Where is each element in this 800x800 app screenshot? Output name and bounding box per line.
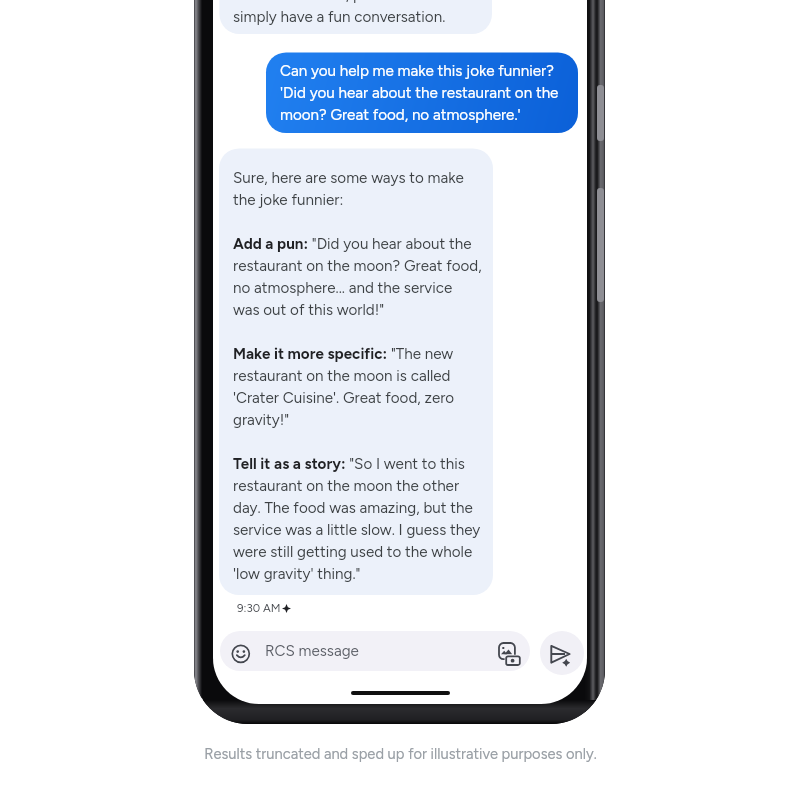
button[interactable]: RCS message [220, 631, 530, 671]
staticText: Sure, here are some ways to make the jok… [233, 169, 482, 583]
button[interactable]: Send [540, 631, 584, 675]
staticText: RCS message [265, 642, 359, 660]
button[interactable]: Attach media [489, 634, 529, 674]
button[interactable] [266, 52, 578, 133]
staticText: Results truncated and sped up for illust… [204, 745, 597, 763]
staticText: Can you help me make this joke funnier? [280, 62, 554, 80]
button[interactable] [219, 148, 493, 595]
staticText: 9:30 AM [237, 601, 281, 615]
staticText: brainstorm ideas, plan events or simply … [233, 0, 449, 26]
staticText: moon? Great food, no atmosphere.' [280, 106, 521, 124]
staticText: 'Did you hear about the restaurant on th… [280, 84, 559, 102]
